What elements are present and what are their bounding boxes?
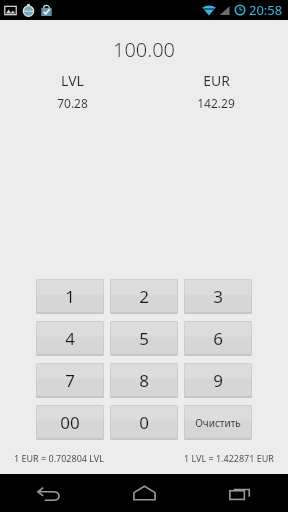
staticText: 2 <box>139 285 149 308</box>
staticText: 4 <box>65 327 75 350</box>
staticText: 00 <box>60 411 80 434</box>
button[interactable]: Back <box>0 474 96 512</box>
button[interactable]: Home <box>96 474 192 512</box>
staticText: 100.00 <box>113 36 175 63</box>
button[interactable]: 2 <box>110 279 178 314</box>
staticText: 70.28 <box>57 95 88 111</box>
staticText: 1 <box>65 285 75 308</box>
staticText: 20:58 <box>249 1 283 19</box>
staticText: 3 <box>213 285 223 308</box>
button[interactable]: 5 <box>110 321 178 356</box>
staticText: 5 <box>139 327 149 350</box>
staticText: 6 <box>213 327 223 350</box>
button[interactable]: 8 <box>110 363 178 398</box>
button[interactable]: Recent apps <box>192 474 288 512</box>
staticText: Очистить <box>195 416 241 430</box>
button[interactable]: 1 <box>36 279 104 314</box>
button[interactable]: 7 <box>36 363 104 398</box>
button[interactable]: 00 <box>36 405 104 440</box>
button[interactable]: 6 <box>184 321 252 356</box>
button[interactable]: 9 <box>184 363 252 398</box>
staticText: LVL <box>61 71 84 90</box>
button[interactable]: 4 <box>36 321 104 356</box>
staticText: 7 <box>65 369 75 392</box>
staticText: 9 <box>213 369 223 392</box>
button[interactable]: 0 <box>110 405 178 440</box>
button[interactable]: 3 <box>184 279 252 314</box>
staticText: EUR <box>203 71 230 90</box>
staticText: 142.29 <box>197 95 235 111</box>
staticText: 0 <box>139 411 149 434</box>
button[interactable]: Очистить <box>184 405 252 440</box>
staticText: 8 <box>139 369 149 392</box>
staticText: 1 EUR = 0.702804 LVL <box>14 452 104 464</box>
staticText: 1 LVL = 1.422871 EUR <box>184 452 274 464</box>
